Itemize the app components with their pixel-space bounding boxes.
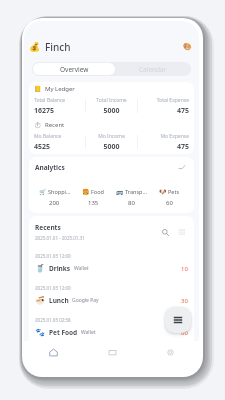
staticText: Google Pay <box>72 297 99 304</box>
staticText: Shoppi... <box>48 188 71 195</box>
staticText: Analytics <box>35 163 65 172</box>
staticText: Total Expense <box>138 97 189 104</box>
button[interactable]: Theme <box>180 40 194 54</box>
staticText: Calendar <box>139 65 167 74</box>
staticText: Transp... <box>125 188 147 195</box>
staticText: Mo Expense <box>138 133 189 140</box>
staticText: Total Income <box>86 97 137 104</box>
staticText: 4525 <box>34 142 85 151</box>
staticText: 30 <box>181 297 188 305</box>
staticText: 135 <box>88 199 99 207</box>
button[interactable]: 🐶 <box>150 188 188 207</box>
staticText: 🐶 <box>159 188 167 195</box>
staticText: 💰 <box>29 42 41 53</box>
staticText: 5000 <box>86 106 137 115</box>
button[interactable]: Search <box>159 226 171 238</box>
staticText: 2025.01.05 12:00 <box>35 253 71 259</box>
button[interactable]: Ledger <box>83 341 141 365</box>
staticText: 🛒 <box>39 188 47 195</box>
staticText: Mo Balance <box>34 133 85 140</box>
staticText: Recents <box>35 223 61 232</box>
staticText: 📒 <box>34 85 42 92</box>
staticText: 🥤 <box>35 264 45 273</box>
staticText: Overview <box>60 65 89 74</box>
staticText: 60 <box>166 199 173 207</box>
staticText: 80 <box>128 199 135 207</box>
staticText: Lunch <box>49 296 69 305</box>
button[interactable]: 🚌 <box>112 188 150 207</box>
staticText: 200 <box>49 199 60 207</box>
staticText: 2025.01.01 - 2025.01.31 <box>35 235 85 241</box>
staticText: 475 <box>138 142 189 151</box>
button[interactable]: 🛒 <box>35 188 74 207</box>
staticText: 🎨 <box>183 43 192 51</box>
button[interactable]: Overview <box>33 63 115 75</box>
staticText: 10 <box>181 265 188 273</box>
staticText: Food <box>91 188 104 195</box>
button[interactable]: 2025.01.05 12:00 <box>35 253 188 285</box>
staticText: 2025.01.05 12:00 <box>35 285 71 291</box>
button[interactable]: Chart <box>178 162 188 172</box>
staticText: 2025.01.05 02:58 <box>35 317 71 323</box>
staticText: Wallet <box>74 265 89 272</box>
staticText: Recent <box>45 121 65 129</box>
staticText: 475 <box>138 106 189 115</box>
button[interactable]: Settings <box>141 341 199 365</box>
button[interactable]: Add entry <box>165 307 191 333</box>
button[interactable]: 🍔 <box>74 188 112 207</box>
button[interactable]: 📒 <box>29 84 194 115</box>
staticText: 🍔 <box>82 188 90 195</box>
button[interactable]: 2025.01.05 02:58 <box>35 317 188 349</box>
button[interactable]: 2025.01.05 12:00 <box>35 285 188 317</box>
staticText: Total Balance <box>34 97 85 104</box>
button[interactable]: Home <box>24 341 83 365</box>
staticText: Drinks <box>49 264 71 273</box>
staticText: Pets <box>168 188 180 195</box>
staticText: 16275 <box>34 106 85 115</box>
staticText: Finch <box>45 40 71 54</box>
staticText: 🍜 <box>35 296 45 305</box>
staticText: ⏱ <box>34 121 42 128</box>
staticText: My Ledger <box>45 85 75 93</box>
staticText: 🚌 <box>116 188 124 195</box>
button[interactable]: More options <box>176 226 188 238</box>
staticText: 🐾 <box>35 328 45 337</box>
button[interactable]: ⏱ <box>29 120 194 151</box>
staticText: 5000 <box>86 142 137 151</box>
staticText: Mo Income <box>86 133 137 140</box>
button[interactable]: Calendar <box>115 63 190 75</box>
staticText: 60 <box>181 329 188 337</box>
staticText: Wallet <box>81 329 96 336</box>
staticText: Pet Food <box>49 328 78 337</box>
